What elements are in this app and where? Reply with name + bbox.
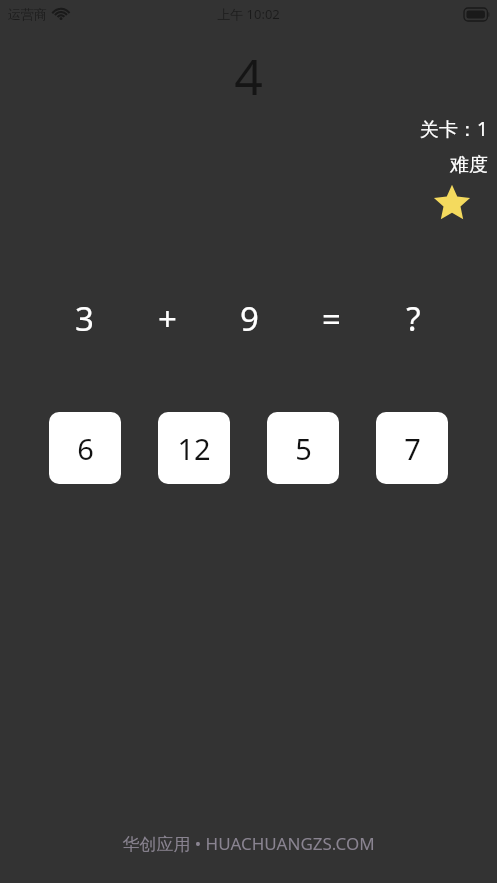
staticText: + [158, 296, 177, 340]
button[interactable]: 6 [49, 412, 121, 484]
staticText: 6 [77, 429, 94, 468]
button[interactable]: 7 [376, 412, 448, 484]
button[interactable]: 5 [267, 412, 339, 484]
staticText: 关卡：1 [420, 116, 488, 142]
staticText: 4 [234, 42, 263, 98]
staticText: = [322, 296, 341, 340]
staticText: 12 [177, 429, 211, 468]
staticText: 难度 [450, 153, 488, 177]
other: Wi-Fi [53, 8, 69, 20]
staticText: 华创应用 • HUACHUANGZS.COM [122, 832, 375, 855]
staticText: 5 [295, 429, 312, 468]
button[interactable]: 12 [158, 412, 230, 484]
staticText: 上午 10:02 [217, 5, 280, 23]
staticText: 3 [75, 296, 94, 340]
staticText: 9 [240, 296, 259, 340]
staticText: 运营商 [8, 6, 47, 22]
staticText: 7 [404, 429, 421, 468]
other: Battery [464, 8, 490, 21]
staticText: ? [406, 296, 421, 340]
